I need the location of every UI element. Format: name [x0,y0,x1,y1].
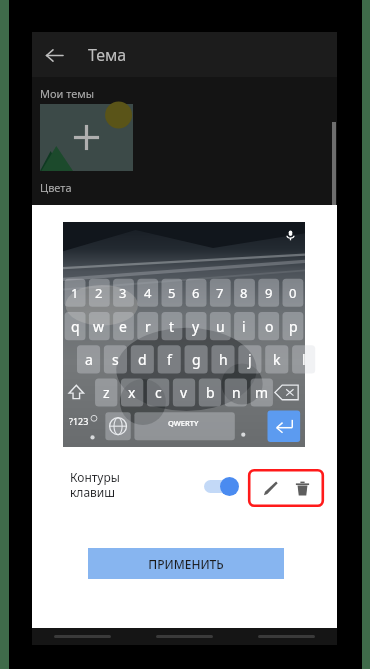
staticText: q [71,317,80,336]
button[interactable]: z [93,378,119,406]
button[interactable]: p [281,312,305,340]
button[interactable]: v [171,378,197,406]
button[interactable]: Recents [235,628,337,645]
button[interactable]: w [87,312,111,340]
staticText: o [265,317,274,336]
staticText: d [138,350,147,369]
button[interactable]: Edit [255,473,285,503]
button[interactable]: u [208,312,232,340]
staticText: 9 [265,284,273,302]
staticText: QWERTY [168,418,199,428]
staticText: s [112,350,119,369]
button[interactable]: t [160,312,184,340]
staticText: b [206,383,215,402]
button[interactable]: g [183,345,210,373]
staticText: f [167,350,172,369]
staticText: p [289,317,298,336]
staticText: e [119,317,127,336]
button[interactable]: c [145,378,171,406]
staticText: j [248,350,252,369]
button[interactable]: y [184,312,208,340]
button[interactable]: 3 [111,279,135,307]
staticText: u [216,317,225,336]
staticText: 6 [192,284,200,302]
button[interactable]: j [236,345,263,373]
staticText: w [93,317,105,336]
button[interactable]: Key borders toggle [200,473,246,499]
staticText: t [169,317,175,336]
button[interactable]: 2 [87,279,111,307]
staticText: h [219,350,228,369]
staticText: a [85,350,93,369]
staticText: i [242,317,246,336]
button[interactable]: s [102,345,129,373]
staticText: ПРИМЕНИТЬ [148,556,224,572]
button[interactable]: r [136,312,160,340]
button[interactable]: q [63,312,87,340]
staticText: 7 [216,284,224,302]
button[interactable]: f [156,345,183,373]
staticText: Тема [88,44,127,66]
button[interactable]: 5 [160,279,184,307]
button[interactable]: h [210,345,237,373]
button[interactable]: Add theme [40,104,133,171]
button[interactable]: Delete [287,473,317,503]
button[interactable]: 9 [257,279,281,307]
staticText: Контуры клавиш [70,469,120,500]
staticText: 8 [240,284,248,302]
button[interactable]: k [263,345,290,373]
staticText: c [155,383,162,402]
button[interactable]: 7 [208,279,232,307]
button[interactable]: l [290,345,317,373]
button[interactable]: 6 [184,279,208,307]
staticText: x [128,383,136,402]
button[interactable]: d [129,345,156,373]
button[interactable]: ПРИМЕНИТЬ [88,548,284,579]
staticText: z [103,383,110,402]
button[interactable]: x [119,378,145,406]
staticText: 1 [71,284,79,302]
button[interactable]: Home [133,628,235,645]
button[interactable]: Back [32,33,76,77]
button[interactable]: 8 [232,279,256,307]
button[interactable]: 4 [136,279,160,307]
staticText: 2 [95,284,103,302]
button[interactable]: Back [32,628,133,645]
staticText: n [232,383,241,402]
button[interactable]: a [75,345,102,373]
staticText: g [192,350,201,369]
staticText: r [145,317,151,336]
staticText: 3 [119,284,127,302]
staticText: v [180,383,188,402]
staticText: ?123 [69,415,89,427]
staticText: 0 [289,284,297,302]
staticText: Мои темы [40,86,95,101]
button[interactable]: o [257,312,281,340]
button[interactable]: 0 [281,279,305,307]
staticText: 5 [168,284,176,302]
button[interactable]: b [197,378,223,406]
button[interactable]: m [249,378,275,406]
button[interactable]: 1 [63,279,87,307]
staticText: k [273,350,281,369]
button[interactable]: e [111,312,135,340]
staticText: Цвета [40,180,72,195]
staticText: 4 [144,284,152,302]
staticText: m [255,383,269,402]
button[interactable]: i [232,312,256,340]
button[interactable]: n [223,378,249,406]
button[interactable]: Voice input [281,226,299,244]
staticText: l [302,350,306,369]
staticText: y [192,317,200,336]
